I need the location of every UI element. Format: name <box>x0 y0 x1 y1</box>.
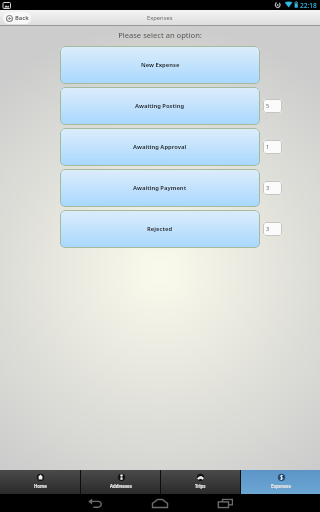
button[interactable]: 5 <box>263 99 282 113</box>
staticText: Home <box>34 483 47 489</box>
staticText: Back <box>15 14 29 22</box>
staticText: 22:18 <box>300 1 317 10</box>
button[interactable]: 3 <box>263 181 282 195</box>
staticText: 3 <box>266 225 270 233</box>
button[interactable]: Trips <box>161 470 240 494</box>
button[interactable]: Back <box>3 12 31 24</box>
button[interactable]: Awaiting Approval <box>60 128 260 166</box>
button[interactable]: Rejected <box>60 210 260 248</box>
staticText: Rejected <box>147 225 173 233</box>
button[interactable]: Awaiting Posting <box>60 87 260 125</box>
button[interactable]: Back <box>82 494 108 512</box>
staticText: Please select an option: <box>0 30 320 40</box>
staticText: New Expense <box>141 61 180 69</box>
staticText: Awaiting Payment <box>133 184 187 192</box>
staticText: Expenses <box>271 483 291 489</box>
staticText: Awaiting Posting <box>135 102 185 110</box>
button[interactable]: Home <box>0 470 80 494</box>
staticText: Expenses <box>147 14 173 22</box>
staticText: Trips <box>195 483 206 489</box>
button[interactable]: Awaiting Payment <box>60 169 260 207</box>
staticText: Awaiting Approval <box>133 143 187 151</box>
staticText: Addresses <box>110 483 132 489</box>
button[interactable]: Expenses <box>241 470 320 494</box>
button[interactable]: 1 <box>263 140 282 154</box>
button[interactable]: New Expense <box>60 46 260 84</box>
staticText: 1 <box>266 143 270 151</box>
staticText: 5 <box>266 102 270 110</box>
button[interactable]: Recent apps <box>212 494 238 512</box>
staticText: 3 <box>266 184 270 192</box>
button[interactable]: Home <box>147 494 173 512</box>
button[interactable]: 3 <box>263 222 282 236</box>
button[interactable]: Addresses <box>81 470 160 494</box>
